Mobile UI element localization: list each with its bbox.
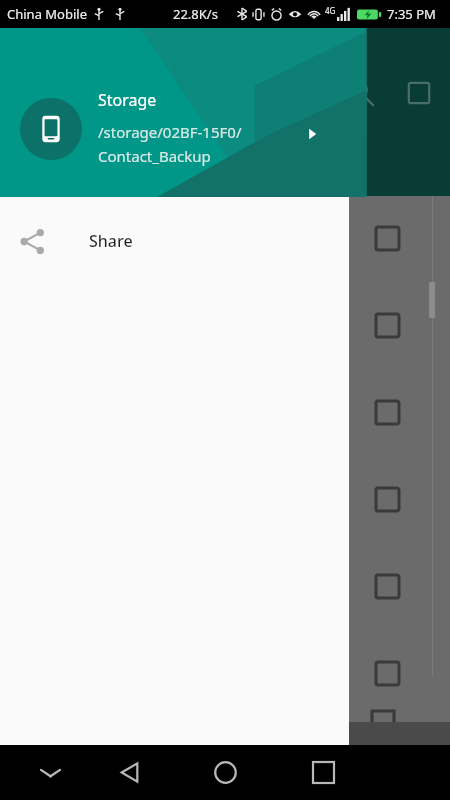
staticText: Storage (98, 89, 157, 111)
button[interactable]: Hide keyboard (18, 745, 82, 800)
staticText: Share (89, 230, 133, 252)
button[interactable]: Select all (402, 76, 436, 110)
button[interactable]: Home (188, 745, 262, 800)
button[interactable]: Search (344, 76, 378, 110)
button[interactable]: Share (0, 197, 349, 285)
button[interactable]: Back (92, 745, 166, 800)
staticText: 4G (325, 5, 336, 16)
button[interactable]: Recent apps (286, 745, 360, 800)
staticText: China Mobile (7, 5, 88, 23)
staticText: Contact_Backup (98, 146, 211, 166)
staticText: 22.8K/s (173, 5, 218, 23)
button[interactable]: Storage (0, 28, 349, 197)
staticText: 7:35 PM (387, 5, 436, 23)
button[interactable]: Expand storage list (299, 121, 325, 147)
staticText: /storage/02BF-15F0/ (98, 122, 242, 142)
